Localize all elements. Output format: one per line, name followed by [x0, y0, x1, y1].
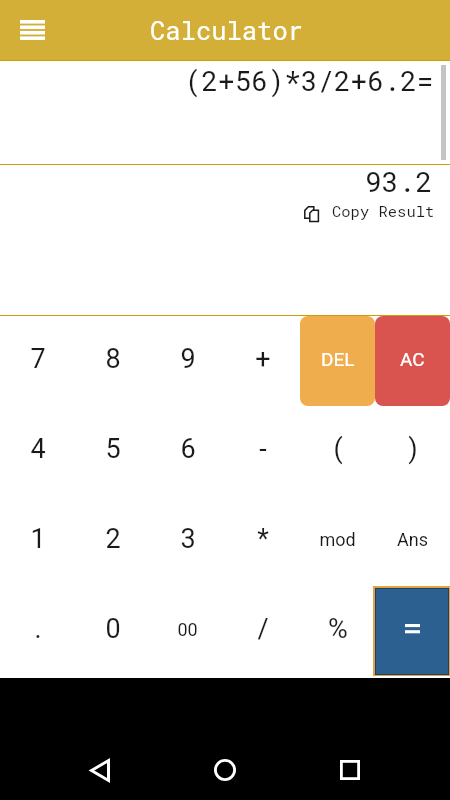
button[interactable]: 2 — [75, 494, 150, 584]
staticText: 9 — [180, 343, 196, 375]
button[interactable]: 00 — [150, 584, 225, 674]
staticText: 1 — [30, 523, 46, 555]
staticText: (2+56)*3/2+6.2= — [185, 62, 434, 98]
button[interactable]: Menu — [12, 10, 52, 50]
button[interactable]: 7 — [0, 313, 75, 404]
staticText: 6 — [180, 433, 196, 465]
button[interactable]: 6 — [150, 404, 225, 494]
staticText: 93.2 — [365, 163, 433, 200]
staticText: AC — [400, 348, 425, 370]
staticText: Ans — [397, 529, 428, 550]
staticText: % — [328, 613, 348, 645]
button[interactable]: + — [225, 313, 300, 404]
button[interactable]: DEL — [300, 316, 375, 406]
staticText: 4 — [30, 433, 46, 465]
button[interactable]: 5 — [75, 404, 150, 494]
button[interactable]: 0 — [75, 584, 150, 674]
button[interactable]: mod — [300, 494, 375, 584]
staticText: * — [257, 523, 269, 555]
button[interactable]: - — [225, 404, 300, 494]
button[interactable]: 4 — [0, 404, 75, 494]
staticText: Calculator — [150, 13, 304, 47]
button[interactable]: Recents — [326, 746, 374, 794]
staticText: 3 — [180, 523, 196, 555]
staticText: 00 — [177, 619, 198, 640]
staticText: 0 — [105, 613, 121, 645]
staticText: . — [34, 613, 42, 645]
button[interactable]: ( — [300, 404, 375, 494]
button[interactable]: ) — [375, 404, 450, 494]
button[interactable]: Home — [201, 746, 249, 794]
staticText: + — [255, 343, 271, 375]
staticText: 2 — [105, 523, 121, 555]
staticText: / — [257, 613, 269, 645]
button[interactable]: Equals — [376, 589, 448, 674]
staticText: DEL — [321, 348, 355, 370]
button[interactable]: AC — [375, 316, 450, 406]
staticText: 8 — [105, 343, 121, 375]
staticText: 7 — [30, 343, 46, 375]
staticText: mod — [319, 529, 356, 550]
button[interactable]: Ans — [375, 494, 450, 584]
staticText: ) — [408, 433, 418, 465]
button[interactable]: 9 — [150, 313, 225, 404]
button[interactable]: Back — [76, 746, 124, 794]
button[interactable]: / — [225, 584, 300, 674]
button[interactable]: 1 — [0, 494, 75, 584]
button[interactable]: % — [300, 584, 375, 674]
button[interactable]: 8 — [75, 313, 150, 404]
staticText: ( — [333, 433, 343, 465]
button[interactable]: * — [225, 494, 300, 584]
staticText: - — [259, 433, 267, 465]
staticText: Copy Result — [332, 201, 435, 221]
button[interactable]: . — [0, 584, 75, 674]
button[interactable]: 3 — [150, 494, 225, 584]
button[interactable]: Copy Result — [304, 201, 435, 221]
staticText: 5 — [105, 433, 121, 465]
